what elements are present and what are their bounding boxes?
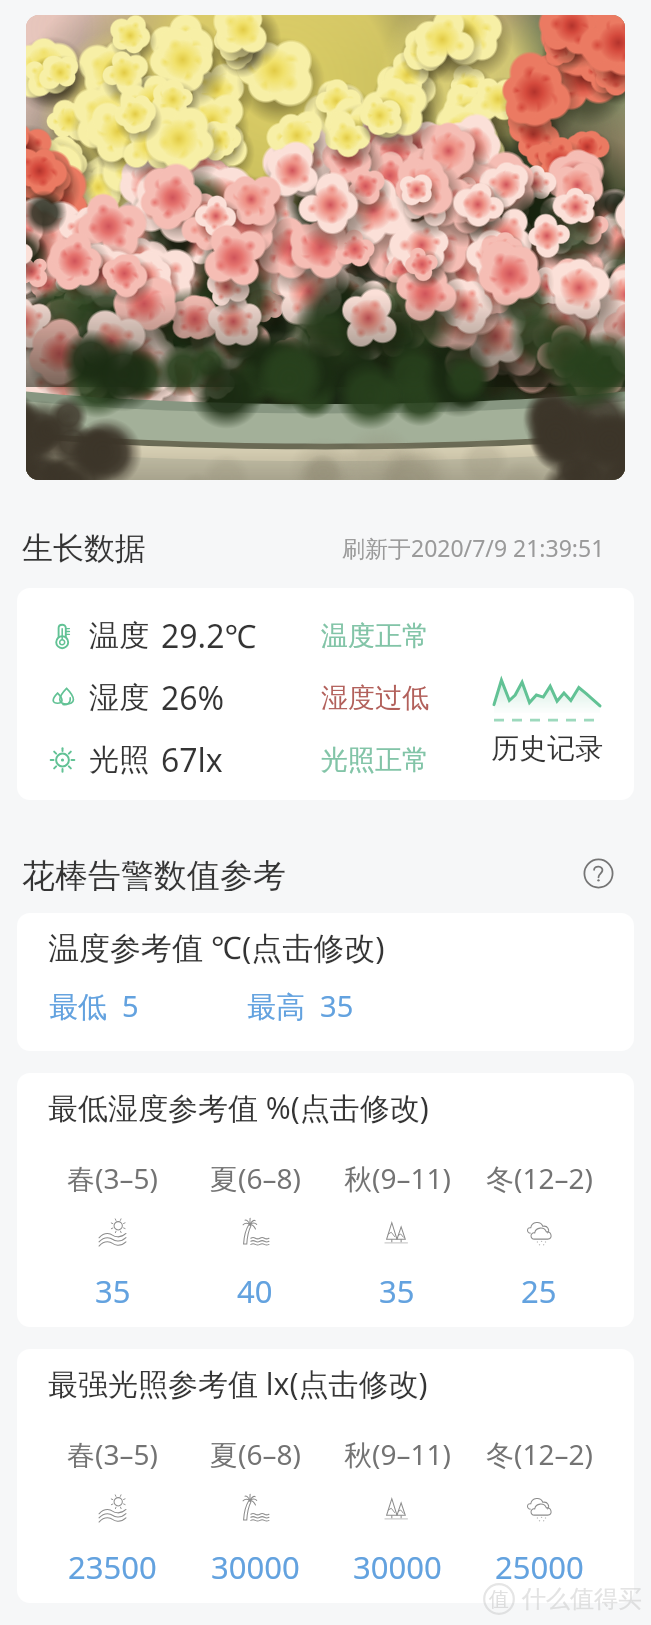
staticText: 刷新于2020/7/9 21:39:51 <box>342 532 605 563</box>
staticText: 春(3–5) <box>67 1159 158 1197</box>
staticText: 25 <box>521 1270 557 1312</box>
staticText: 湿度 <box>89 679 149 717</box>
staticText: 30000 <box>211 1546 300 1588</box>
staticText: 历史记录 <box>491 731 603 766</box>
staticText: 夏(6–8) <box>210 1435 301 1473</box>
staticText: 30000 <box>353 1546 442 1588</box>
staticText: 冬(12–2) <box>486 1435 593 1473</box>
button[interactable]: Help <box>583 858 614 889</box>
staticText: 35 <box>379 1270 415 1312</box>
button[interactable]: 最强光照参考值 lx(点击修改) <box>17 1349 634 1603</box>
staticText: 温度参考值 ℃(点击修改) <box>48 926 385 968</box>
staticText: 温度 <box>89 617 149 655</box>
staticText: 26% <box>161 676 225 720</box>
staticText: 最低湿度参考值 %(点击修改) <box>48 1087 429 1128</box>
button[interactable]: 历史记录 <box>491 676 603 766</box>
button[interactable]: Plant photo <box>26 15 625 480</box>
staticText: 35 <box>95 1270 131 1312</box>
staticText: 春(3–5) <box>67 1435 158 1473</box>
staticText: 光照正常 <box>321 743 429 777</box>
staticText: 最高 35 <box>247 986 354 1026</box>
staticText: 冬(12–2) <box>486 1159 593 1197</box>
staticText: 40 <box>237 1270 273 1312</box>
staticText: 23500 <box>68 1546 157 1588</box>
staticText: 什么值得买 <box>522 1584 642 1614</box>
staticText: 值 <box>489 1587 509 1612</box>
staticText: 25000 <box>495 1546 584 1588</box>
staticText: 最强光照参考值 lx(点击修改) <box>48 1363 428 1404</box>
staticText: 湿度过低 <box>321 681 429 715</box>
staticText: 温度正常 <box>321 619 429 653</box>
staticText: 生长数据 <box>22 529 146 566</box>
staticText: 29.2℃ <box>161 614 257 658</box>
staticText: 夏(6–8) <box>210 1159 301 1197</box>
staticText: 最低 5 <box>49 986 139 1026</box>
staticText: 秋(9–11) <box>344 1159 451 1197</box>
staticText: 花棒告警数值参考 <box>22 855 286 891</box>
staticText: 光照 <box>89 741 149 779</box>
staticText: 秋(9–11) <box>344 1435 451 1473</box>
button[interactable]: 温度参考值 ℃(点击修改) <box>17 913 634 1051</box>
staticText: 67lx <box>161 738 223 782</box>
button[interactable]: 最低湿度参考值 %(点击修改) <box>17 1073 634 1327</box>
